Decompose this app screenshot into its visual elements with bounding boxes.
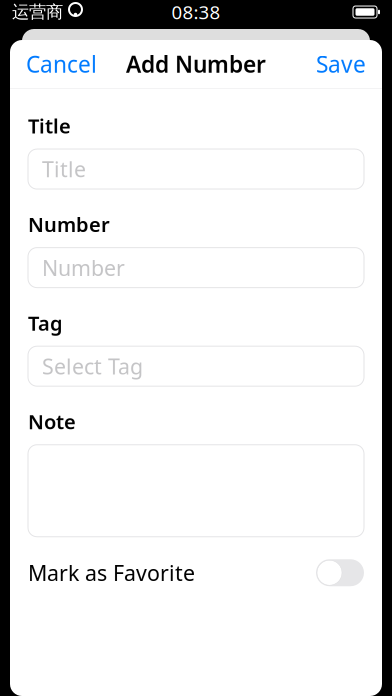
staticText: 08:38 <box>171 0 220 24</box>
staticText: Mark as Favorite <box>28 559 195 587</box>
staticText: Number <box>42 253 125 282</box>
staticText: Add Number <box>126 49 266 79</box>
staticText: 运营商 <box>12 1 63 23</box>
button[interactable]: Mark as Favorite <box>10 555 382 591</box>
staticText: Select Tag <box>42 352 143 380</box>
staticText: Save <box>316 49 366 79</box>
staticText: Tag <box>28 310 63 336</box>
staticText: Note <box>28 408 76 435</box>
staticText: Cancel <box>26 49 97 79</box>
staticText: Number <box>28 211 110 238</box>
button[interactable]: Save <box>300 39 382 89</box>
button[interactable]: Cancel <box>10 39 113 89</box>
staticText: Title <box>42 155 86 183</box>
staticText: Title <box>28 112 71 139</box>
